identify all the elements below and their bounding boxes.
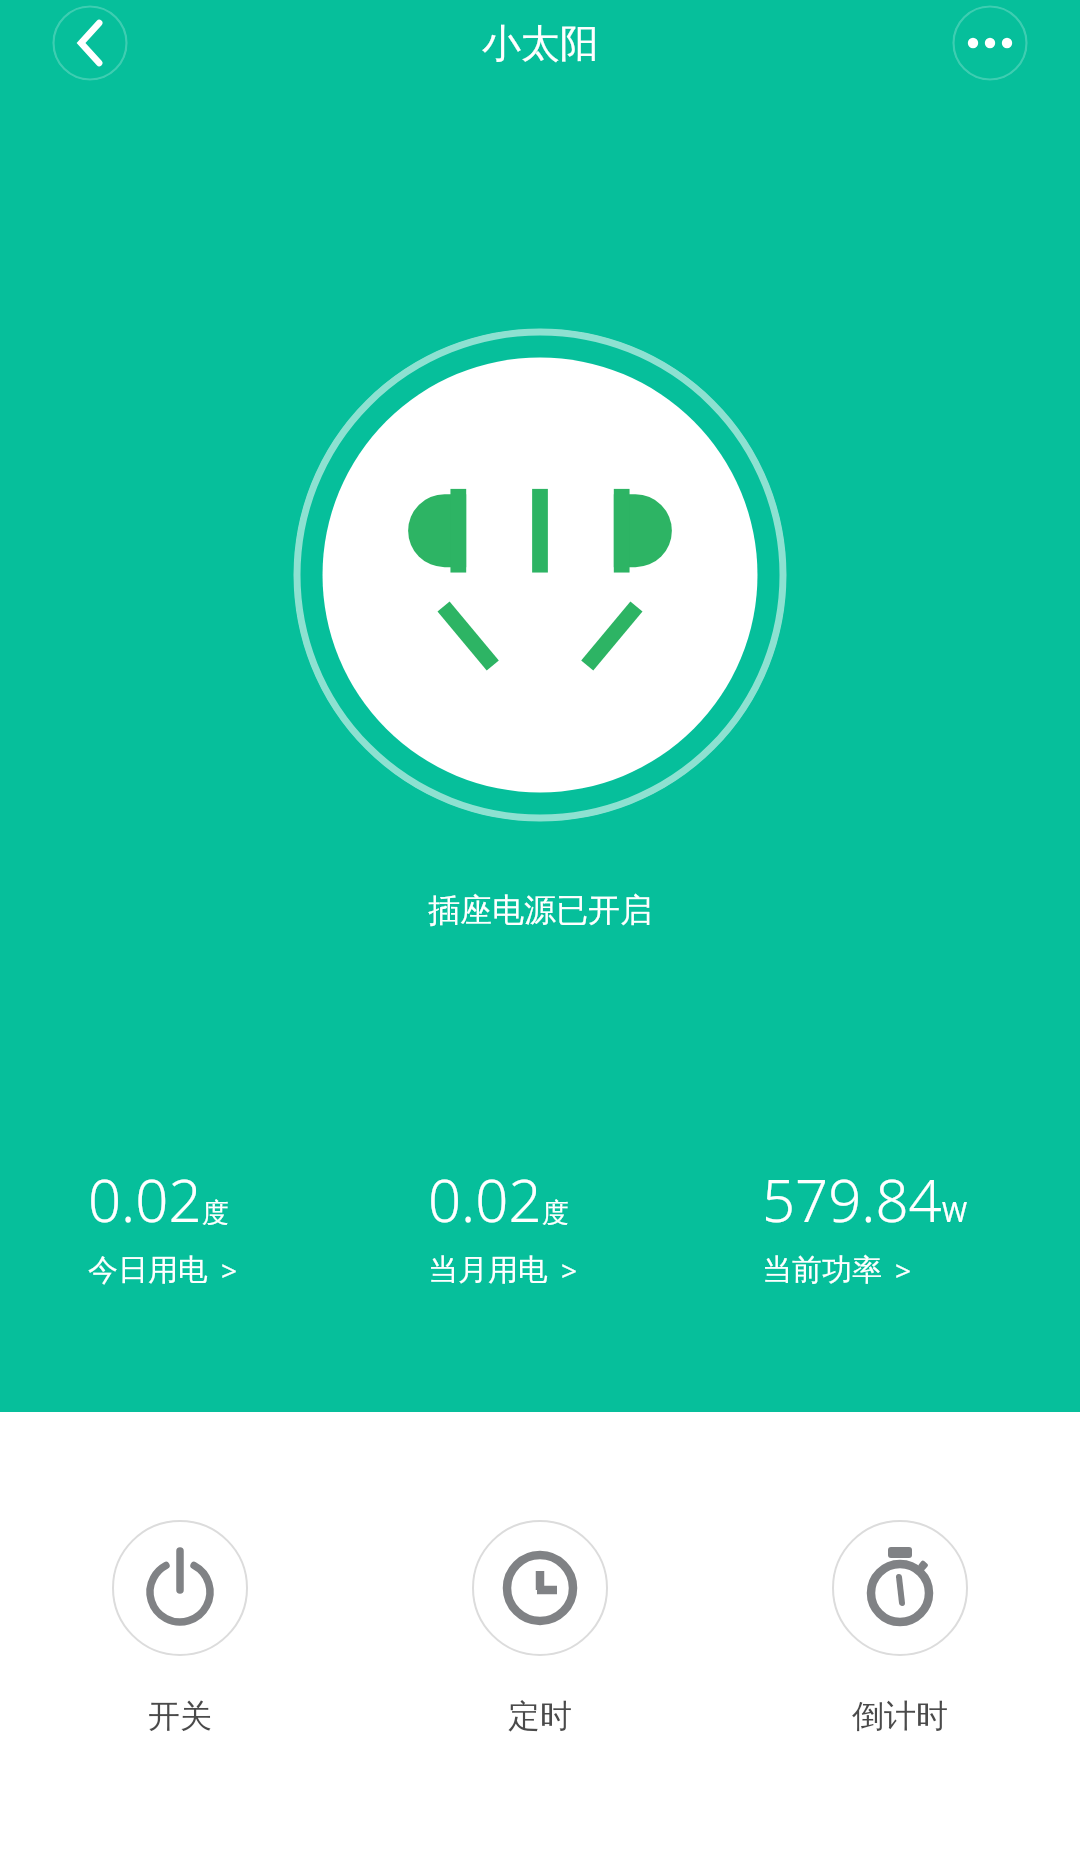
staticText: 579.84 <box>762 1160 942 1239</box>
staticText: > <box>561 1251 578 1289</box>
staticText: W <box>942 1193 968 1230</box>
staticText: 度 <box>542 1196 569 1230</box>
button[interactable]: 定时 <box>360 1412 720 1736</box>
button[interactable]: 倒计时 <box>720 1412 1080 1736</box>
button[interactable]: More options <box>952 5 1028 81</box>
staticText: 插座电源已开启 <box>428 890 652 930</box>
staticText: 今日用电 <box>88 1251 208 1289</box>
staticText: > <box>221 1251 238 1289</box>
button[interactable]: 0.02 <box>0 1160 360 1289</box>
staticText: 当前功率 <box>762 1251 882 1289</box>
button[interactable]: 579.84 <box>720 1160 1080 1289</box>
staticText: 开关 <box>148 1696 212 1736</box>
button[interactable]: 开关 <box>0 1412 360 1736</box>
button[interactable]: 0.02 <box>360 1160 720 1289</box>
staticText: 定时 <box>508 1696 572 1736</box>
staticText: 0.02 <box>428 1160 542 1239</box>
button[interactable]: Back <box>52 5 128 81</box>
staticText: 度 <box>202 1196 229 1230</box>
staticText: 0.02 <box>88 1160 202 1239</box>
staticText: 当月用电 <box>428 1251 548 1289</box>
button[interactable]: Socket power toggle <box>293 328 787 822</box>
staticText: 倒计时 <box>852 1696 948 1736</box>
staticText: > <box>895 1251 912 1289</box>
staticText: 小太阳 <box>482 19 599 68</box>
